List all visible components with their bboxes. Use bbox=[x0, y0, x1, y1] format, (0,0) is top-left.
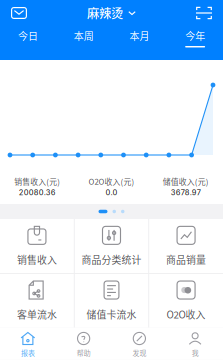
staticText: 3678.97 bbox=[171, 188, 201, 197]
button[interactable]: 商品分类统计 bbox=[75, 219, 148, 273]
button[interactable]: 销售收入 bbox=[0, 219, 74, 273]
staticText: 帮助 bbox=[77, 348, 91, 358]
staticText: 本月 bbox=[129, 28, 149, 43]
staticText: 麻辣烫 bbox=[87, 4, 123, 22]
button[interactable]: O2O收入 bbox=[149, 274, 223, 328]
staticText: 本周 bbox=[74, 28, 94, 43]
button[interactable]: 客单流水 bbox=[0, 274, 74, 328]
staticText: 我 bbox=[192, 348, 199, 358]
button[interactable]: 发现 bbox=[111, 328, 167, 360]
button[interactable]: 今年 bbox=[167, 26, 223, 50]
staticText: 发现 bbox=[132, 348, 146, 358]
staticText: 储值卡流水 bbox=[86, 307, 136, 321]
staticText: 0.0 bbox=[105, 188, 117, 197]
button[interactable]: 本月 bbox=[111, 26, 167, 50]
staticText: 销售收入(元) bbox=[14, 176, 60, 187]
staticText: O2O收入(元) bbox=[88, 176, 134, 187]
button[interactable]: 报表 bbox=[0, 328, 56, 360]
staticText: 销售收入 bbox=[17, 252, 57, 267]
staticText: 今年 bbox=[185, 28, 205, 43]
staticText: 20080.36 bbox=[19, 188, 56, 197]
button[interactable]: 帮助 bbox=[56, 328, 112, 360]
staticText: 储值收入(元) bbox=[163, 176, 209, 187]
button[interactable]: 商品销量 bbox=[149, 219, 223, 273]
staticText: 客单流水 bbox=[17, 307, 57, 321]
button[interactable]: Messages bbox=[1, 0, 37, 26]
staticText: 商品销量 bbox=[166, 252, 206, 267]
button[interactable]: 今日 bbox=[0, 26, 56, 50]
staticText: 报表 bbox=[21, 348, 35, 358]
staticText: 今日 bbox=[18, 28, 38, 43]
button[interactable]: 本周 bbox=[56, 26, 112, 50]
button[interactable]: 储值卡流水 bbox=[75, 274, 148, 328]
button[interactable]: 我 bbox=[167, 328, 223, 360]
button[interactable]: 麻辣烫 bbox=[87, 0, 136, 26]
button[interactable]: Scan bbox=[186, 0, 222, 26]
staticText: 商品分类统计 bbox=[81, 252, 141, 267]
staticText: O2O收入 bbox=[167, 307, 206, 321]
